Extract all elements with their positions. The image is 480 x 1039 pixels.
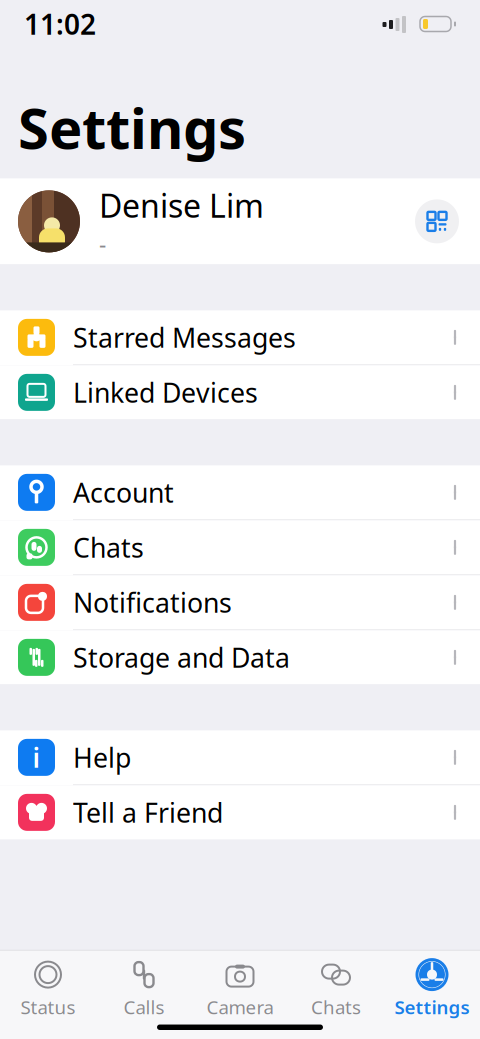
button[interactable]: Settings xyxy=(384,950,480,1019)
button[interactable]: i xyxy=(0,730,480,785)
button[interactable]: Notifications xyxy=(0,575,480,630)
staticText: Chats xyxy=(311,995,361,1019)
button[interactable]: Storage and Data xyxy=(0,630,480,684)
button[interactable]: Denise Lim xyxy=(0,178,480,264)
button[interactable]: Camera xyxy=(192,950,288,1019)
staticText: Help xyxy=(73,740,131,775)
button[interactable]: Status xyxy=(0,950,96,1019)
staticText: i xyxy=(32,740,40,775)
staticText: Denise Lim xyxy=(99,184,264,227)
staticText: Tell a Friend xyxy=(73,795,223,830)
staticText: Storage and Data xyxy=(73,640,290,675)
staticText: Status xyxy=(20,995,75,1019)
staticText: Notifications xyxy=(73,585,232,620)
button[interactable]: Calls xyxy=(96,950,192,1019)
button[interactable]: Starred Messages xyxy=(0,310,480,365)
staticText: 11:02 xyxy=(24,5,96,43)
staticText: Chats xyxy=(73,530,144,565)
staticText: Linked Devices xyxy=(73,375,258,410)
staticText: Camera xyxy=(206,995,273,1019)
staticText: Starred Messages xyxy=(73,320,296,355)
staticText: Calls xyxy=(123,995,164,1019)
button[interactable]: Chats xyxy=(288,950,384,1019)
staticText: Settings xyxy=(18,90,246,164)
button[interactable]: Tell a Friend xyxy=(0,785,480,839)
staticText: - xyxy=(99,229,106,259)
staticText: Settings xyxy=(394,995,469,1019)
button[interactable]: Account xyxy=(0,465,480,520)
staticText: Account xyxy=(73,475,174,510)
button[interactable]: Linked Devices xyxy=(0,365,480,419)
button[interactable]: Chats xyxy=(0,520,480,575)
